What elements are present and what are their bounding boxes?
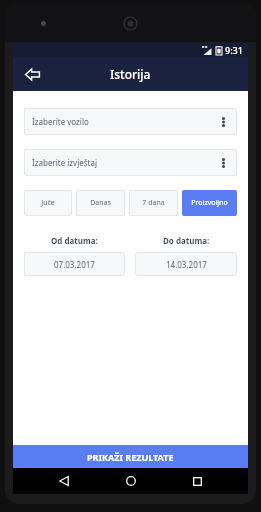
staticText: Istorija bbox=[110, 66, 151, 82]
staticText: Izaberite izvještaj bbox=[32, 157, 217, 168]
staticText: Juče bbox=[41, 198, 55, 208]
button[interactable]: Recent apps bbox=[182, 468, 212, 494]
staticText: Proizvoljno bbox=[191, 198, 228, 208]
staticText: Od datuma: bbox=[51, 235, 98, 246]
button[interactable]: Back bbox=[17, 59, 47, 89]
button[interactable]: 07.03.2017 bbox=[24, 252, 125, 276]
staticText: PRIKAŽI REZULTATE bbox=[87, 451, 174, 463]
button[interactable]: Juče bbox=[24, 190, 72, 216]
other: More options bbox=[217, 157, 229, 169]
button[interactable]: Back bbox=[49, 468, 79, 494]
button[interactable]: Home bbox=[116, 468, 146, 494]
button[interactable]: Danas bbox=[76, 190, 125, 216]
staticText: 9:31 bbox=[225, 44, 243, 56]
staticText: Do datuma: bbox=[163, 235, 210, 246]
staticText: 7 dana bbox=[142, 198, 165, 208]
button[interactable]: PRIKAŽI REZULTATE bbox=[13, 445, 248, 468]
staticText: 14.03.2017 bbox=[166, 259, 207, 270]
staticText: Danas bbox=[90, 198, 111, 208]
button[interactable]: 14.03.2017 bbox=[135, 252, 237, 276]
button[interactable]: Proizvoljno bbox=[182, 190, 237, 216]
button[interactable]: Izaberite vozilo bbox=[24, 108, 237, 135]
staticText: Izaberite vozilo bbox=[32, 116, 217, 127]
button[interactable]: Izaberite izvještaj bbox=[24, 149, 237, 176]
button[interactable]: 7 dana bbox=[129, 190, 178, 216]
staticText: 07.03.2017 bbox=[54, 259, 95, 270]
other: More options bbox=[217, 116, 229, 128]
